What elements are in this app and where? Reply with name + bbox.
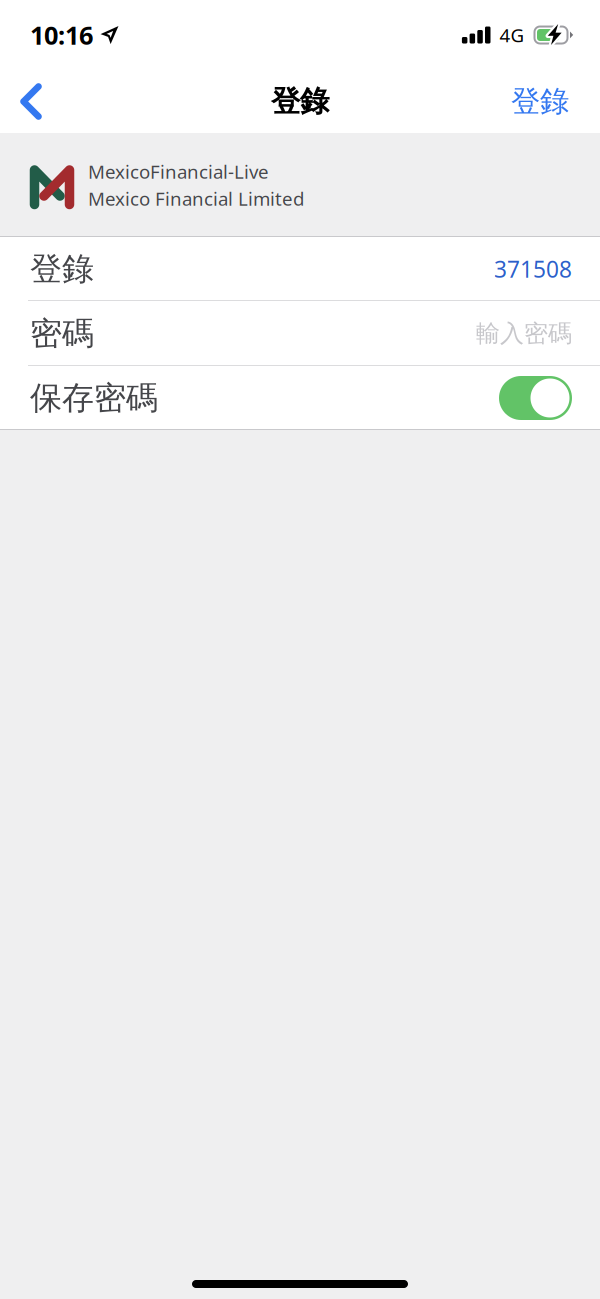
staticText: 密碼 (30, 314, 94, 353)
staticText: 10:16 (30, 18, 93, 52)
button[interactable]: Save password (499, 376, 572, 420)
staticText: 輸入密碼 (476, 319, 572, 348)
staticText: 4G (499, 23, 524, 47)
staticText: 登錄 (271, 83, 329, 119)
staticText: 登錄 (30, 249, 94, 289)
staticText: 登錄 (511, 83, 569, 119)
staticText: 371508 (494, 254, 572, 284)
button[interactable]: 登錄 (485, 70, 600, 133)
staticText: MexicoFinancial-Live (88, 159, 269, 184)
staticText: Mexico Financial Limited (88, 186, 304, 211)
button[interactable]: Back (0, 70, 68, 133)
button[interactable]: 密碼 (0, 301, 600, 366)
button[interactable]: 登錄 (0, 237, 600, 301)
staticText: 保存密碼 (30, 378, 158, 418)
